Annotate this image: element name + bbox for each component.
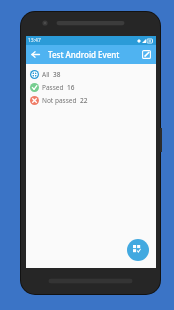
button[interactable]: All [26, 68, 156, 81]
staticText: 22 [80, 96, 88, 105]
staticText: All [42, 70, 50, 79]
button[interactable]: Edit [137, 45, 156, 64]
button[interactable]: Not passed [26, 94, 156, 107]
staticText: Not passed [42, 96, 77, 105]
button[interactable]: Passed [26, 81, 156, 94]
staticText: Passed [42, 83, 64, 92]
staticText: Test Android Event [48, 49, 137, 60]
button[interactable]: Back [26, 45, 45, 64]
staticText: 38 [53, 70, 61, 79]
staticText: 13:47 [28, 37, 41, 44]
button[interactable]: Add test [127, 239, 149, 261]
staticText: 16 [67, 83, 75, 92]
